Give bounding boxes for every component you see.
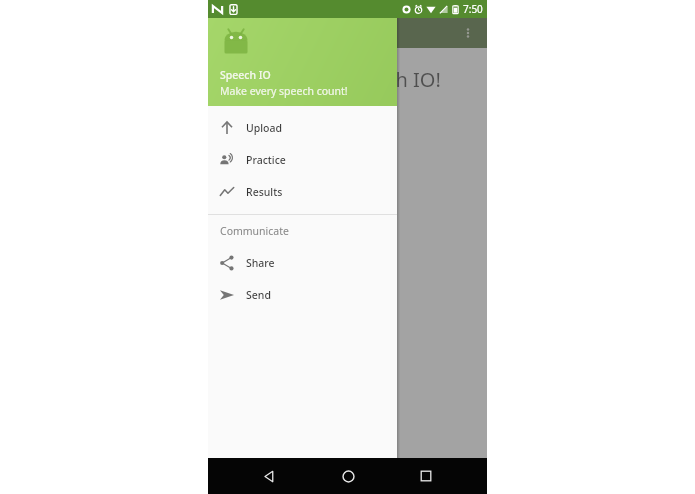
button[interactable]: Send [208, 279, 397, 311]
staticText: Communicate [220, 224, 289, 238]
button[interactable]: Share [208, 247, 397, 279]
staticText: 7:50 [463, 2, 483, 16]
button[interactable]: Speech IO [208, 18, 397, 106]
button[interactable]: Upload [208, 112, 397, 144]
staticText: Upload [246, 121, 283, 135]
button[interactable]: Back [252, 459, 286, 493]
staticText: Results [246, 185, 283, 199]
button[interactable]: Home [331, 459, 365, 493]
button[interactable]: Practice [208, 144, 397, 176]
button[interactable]: Results [208, 176, 397, 208]
staticText: Speech IO [220, 68, 271, 82]
staticText: Practice [246, 153, 286, 167]
staticText: Welcome to Speech IO! [224, 66, 441, 93]
staticText: Make every speech count! [224, 105, 383, 123]
button[interactable]: More options [455, 20, 481, 46]
button[interactable]: Recents [409, 459, 443, 493]
staticText: Share [246, 256, 275, 270]
staticText: Send [246, 288, 271, 302]
staticText: Make every speech count! [220, 84, 348, 98]
